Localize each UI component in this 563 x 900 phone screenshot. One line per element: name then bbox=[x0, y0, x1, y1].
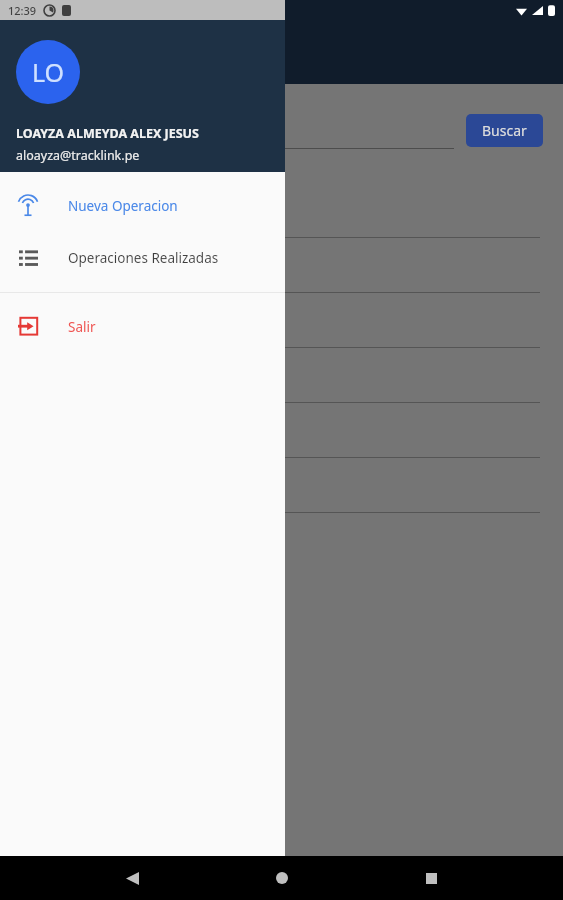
staticText: LOAYZA ALMEYDA ALEX JESUS bbox=[16, 125, 199, 142]
button[interactable]: Recent apps bbox=[413, 860, 449, 896]
staticText: Salir bbox=[68, 318, 96, 336]
staticText: LO bbox=[32, 55, 65, 89]
staticText: 12:39 bbox=[8, 3, 37, 18]
button[interactable]: Buscar bbox=[466, 114, 543, 147]
staticText: Operaciones Realizadas bbox=[68, 249, 219, 267]
staticText: Nueva Operacion bbox=[68, 197, 178, 215]
button[interactable]: Nueva Operacion bbox=[0, 180, 285, 232]
staticText: aloayza@tracklink.pe bbox=[16, 147, 140, 164]
button[interactable]: Back bbox=[114, 860, 150, 896]
button[interactable]: Home bbox=[264, 860, 300, 896]
staticText: Buscar bbox=[482, 121, 527, 140]
button[interactable]: Operaciones Realizadas bbox=[0, 232, 285, 284]
button[interactable]: Salir bbox=[0, 301, 285, 353]
